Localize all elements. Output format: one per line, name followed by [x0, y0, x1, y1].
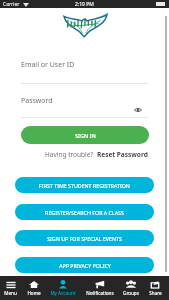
staticText: FIRST TIME STUDENT REGISTRATION	[39, 182, 130, 189]
staticText: Notifications	[86, 290, 114, 296]
button[interactable]: My Account	[47, 280, 79, 296]
button[interactable]: Show password	[134, 106, 142, 114]
staticText: SIGN UP FOR SPECIAL EVENTS	[47, 235, 122, 242]
staticText: Groups	[123, 290, 139, 296]
staticText: 2:19 PM	[75, 1, 94, 8]
button[interactable]: REGISTER/SEARCH FOR A CLASS	[15, 204, 154, 220]
staticText: Share	[149, 290, 162, 296]
button[interactable]: APP PRIVACY POLICY	[15, 257, 154, 273]
staticText: Password	[21, 96, 53, 106]
button[interactable]: SIGN IN	[21, 126, 149, 144]
button[interactable]: Notifications	[79, 280, 121, 296]
button[interactable]: Share	[141, 280, 169, 296]
button[interactable]: SIGN UP FOR SPECIAL EVENTS	[15, 230, 154, 246]
staticText: REGISTER/SEARCH FOR A CLASS	[45, 209, 124, 216]
button[interactable]: Menu	[0, 280, 21, 296]
staticText: Email or User ID	[21, 60, 75, 70]
staticText: APP PRIVACY POLICY	[59, 262, 111, 269]
button[interactable]: Reset Password	[97, 150, 148, 159]
staticText: My Account	[50, 290, 76, 296]
staticText: Having trouble?	[45, 150, 97, 159]
button[interactable]: FIRST TIME STUDENT REGISTRATION	[15, 177, 154, 193]
staticText: Menu	[4, 290, 17, 296]
staticText: SIGN IN	[75, 132, 96, 139]
staticText: Home	[27, 290, 41, 296]
button[interactable]: Home	[21, 280, 47, 296]
button[interactable]: Groups	[121, 280, 141, 296]
staticText: Carrier	[3, 1, 20, 8]
